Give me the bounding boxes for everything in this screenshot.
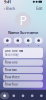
staticText: Row one <box>5 61 18 64</box>
staticText: Edit <box>36 6 42 11</box>
button[interactable]: call <box>14 38 22 48</box>
staticText: • <box>28 44 29 48</box>
button[interactable]: msg <box>3 38 11 48</box>
button[interactable]: video <box>24 38 32 48</box>
staticText: Line one text <box>5 49 23 53</box>
staticText: Name Surname <box>8 30 38 35</box>
button[interactable]: Tab 2 <box>9 90 18 100</box>
button[interactable]: Row four <box>3 81 43 88</box>
button[interactable]: Row two <box>3 67 43 73</box>
staticText: 9:41 <box>4 0 11 4</box>
staticText: Row four <box>5 83 18 86</box>
button[interactable]: Row one <box>3 59 43 66</box>
button[interactable]: Row three <box>3 74 43 80</box>
staticText: Row two <box>5 68 17 72</box>
button[interactable]: Tab 4 <box>28 90 37 100</box>
button[interactable]: Tab 5 <box>37 90 46 100</box>
button[interactable]: Edit <box>36 6 42 11</box>
button[interactable]: mail <box>35 38 43 48</box>
staticText: P <box>19 12 26 28</box>
staticText: • <box>7 44 8 48</box>
button[interactable]: Tab 3 <box>18 90 28 100</box>
button[interactable]: Tab 1 <box>0 90 9 100</box>
staticText: • <box>17 44 18 48</box>
staticText: Row three <box>5 75 20 79</box>
staticText: • <box>38 44 39 48</box>
button[interactable]: ‹ Back <box>4 6 15 11</box>
staticText: Secondary <box>5 53 18 56</box>
button[interactable]: Line one text <box>3 48 43 58</box>
staticText: ‹ Back <box>4 6 15 11</box>
